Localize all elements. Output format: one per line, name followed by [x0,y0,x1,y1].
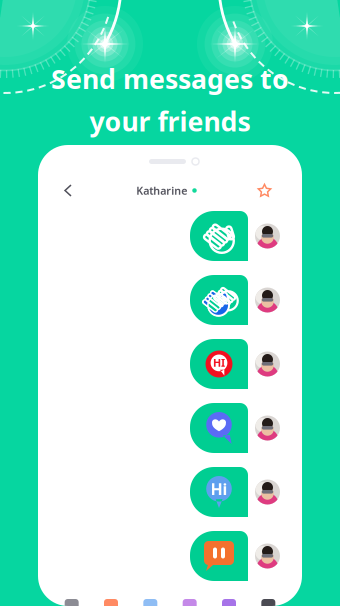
button[interactable]: Sticker pack [52,595,91,606]
button[interactable]: HI [38,339,280,389]
button[interactable]: Back [53,177,83,204]
button[interactable]: Sticker pack [91,595,131,606]
staticText: Send messages to [51,61,289,96]
button[interactable] [38,531,280,581]
button[interactable] [38,403,280,453]
button[interactable]: Add to favourites [246,176,283,205]
button[interactable]: Hi [38,467,280,517]
button[interactable] [38,275,280,325]
button[interactable]: Sticker pack [249,595,288,606]
button[interactable]: Sticker pack [209,595,249,606]
button[interactable]: Sticker pack [131,595,170,606]
staticText: Katharine [136,183,187,198]
staticText: your friends [89,103,250,139]
staticText: Hi [210,478,227,500]
button[interactable] [38,211,280,261]
button[interactable]: Sticker pack [170,595,209,606]
staticText: HI [213,355,225,370]
